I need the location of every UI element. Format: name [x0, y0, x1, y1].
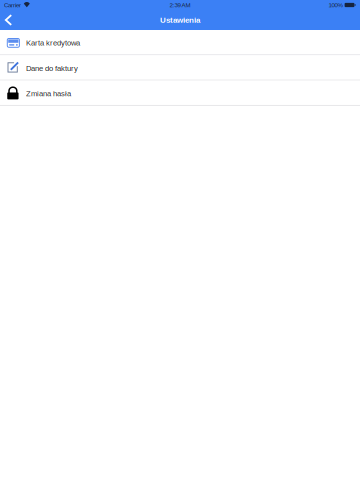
button[interactable]: Karta kredytowa — [0, 30, 360, 55]
staticText: 2:39 AM — [169, 2, 190, 8]
staticText: Carrier — [4, 2, 21, 8]
staticText: 100% — [329, 2, 343, 8]
button[interactable]: Back — [0, 10, 21, 30]
staticText: Karta kredytowa — [26, 39, 80, 47]
staticText: Ustawienia — [160, 15, 200, 24]
button[interactable]: Dane do faktury — [0, 55, 360, 81]
button[interactable]: Zmiana hasła — [0, 81, 360, 106]
staticText: Zmiana hasła — [26, 89, 71, 98]
staticText: Dane do faktury — [26, 64, 78, 72]
